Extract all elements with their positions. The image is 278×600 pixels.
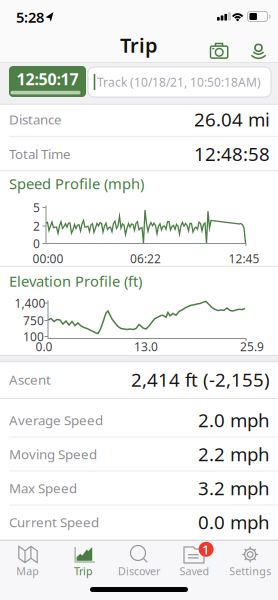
staticText: 2.2 mph xyxy=(198,442,270,466)
staticText: Distance xyxy=(9,110,62,128)
staticText: 12:45 xyxy=(228,250,259,266)
staticText: 25.9 xyxy=(240,338,264,354)
button[interactable]: Trip xyxy=(56,540,111,577)
button[interactable]: Settings xyxy=(222,540,278,577)
staticText: Average Speed xyxy=(9,411,103,429)
staticText: Speed Profile (mph) xyxy=(9,174,144,193)
staticText: 100 xyxy=(23,328,44,344)
staticText: 750 xyxy=(23,312,44,328)
staticText: Track (10/18/21, 10:50:18AM) xyxy=(97,74,261,90)
button[interactable]: Discover xyxy=(111,540,167,577)
staticText: Trip xyxy=(120,32,158,58)
staticText: 0.0 mph xyxy=(198,510,270,534)
button[interactable]: 1 xyxy=(167,540,222,577)
staticText: 13.0 xyxy=(134,338,158,354)
staticText: Map xyxy=(16,564,39,578)
staticText: Total Time xyxy=(9,145,71,163)
button[interactable]: Track (10/18/21, 10:50:18AM) xyxy=(88,67,271,97)
staticText: 1 xyxy=(202,540,210,558)
staticText: Settings xyxy=(229,564,271,578)
staticText: 3.2 mph xyxy=(198,476,270,500)
button[interactable]: Camera xyxy=(206,38,232,62)
staticText: Moving Speed xyxy=(9,445,97,463)
staticText: 12:50:17 xyxy=(16,68,78,90)
staticText: 0 xyxy=(33,235,40,251)
staticText: Elevation Profile (ft) xyxy=(9,271,142,291)
staticText: 1,400 xyxy=(14,295,45,311)
staticText: Max Speed xyxy=(9,479,77,497)
staticText: 5 xyxy=(33,199,40,215)
staticText: 0.0 xyxy=(35,338,52,354)
button[interactable]: Record xyxy=(247,42,269,64)
staticText: Trip xyxy=(74,564,93,578)
staticText: 2,414 ft (-2,155) xyxy=(131,367,270,392)
staticText: 06:22 xyxy=(130,250,161,266)
staticText: Ascent xyxy=(9,371,51,388)
staticText: 00:00 xyxy=(32,250,63,266)
staticText: 12:48:58 xyxy=(194,141,270,166)
button[interactable]: Map xyxy=(0,540,56,577)
staticText: 5:28 xyxy=(16,7,44,27)
staticText: Saved xyxy=(180,564,210,578)
staticText: 2 xyxy=(33,218,40,234)
staticText: 26.04 mi xyxy=(194,107,270,132)
staticText: Discover xyxy=(118,564,160,578)
staticText: Current Speed xyxy=(9,513,99,531)
staticText: 2.0 mph xyxy=(198,408,270,432)
button[interactable]: 12:50:17 xyxy=(9,66,86,97)
